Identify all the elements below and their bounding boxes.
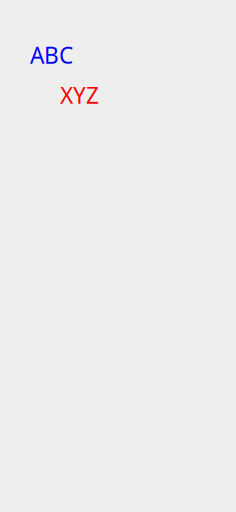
staticText: ABC — [30, 40, 73, 70]
staticText: XYZ — [60, 80, 99, 110]
